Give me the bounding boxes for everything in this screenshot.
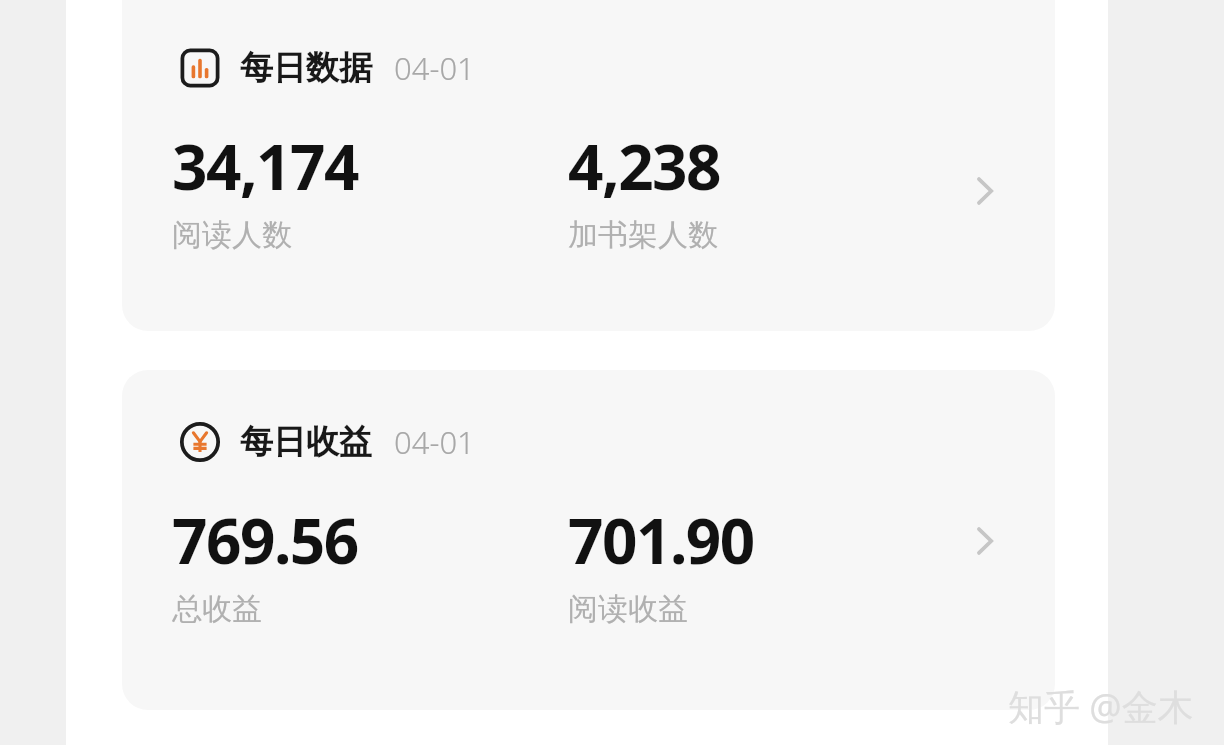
- staticText: 总收益: [172, 590, 262, 628]
- staticText: 每日收益: [240, 421, 372, 463]
- button[interactable]: 查看详情: [955, 512, 1013, 570]
- staticText: 4,238: [568, 124, 721, 208]
- staticText: 阅读收益: [568, 590, 688, 628]
- staticText: 04-01: [394, 47, 475, 89]
- button[interactable]: 查看详情: [955, 162, 1013, 220]
- staticText: 每日数据: [240, 47, 372, 89]
- staticText: 769.56: [172, 498, 358, 582]
- button[interactable]: 每日数据: [122, 0, 1055, 331]
- staticText: 701.90: [568, 498, 754, 582]
- button[interactable]: 每日收益: [122, 370, 1055, 710]
- staticText: 04-01: [394, 421, 475, 463]
- staticText: 知乎 @金木: [1008, 682, 1194, 731]
- staticText: 阅读人数: [172, 216, 292, 254]
- staticText: 34,174: [172, 124, 358, 208]
- staticText: 加书架人数: [568, 216, 718, 254]
